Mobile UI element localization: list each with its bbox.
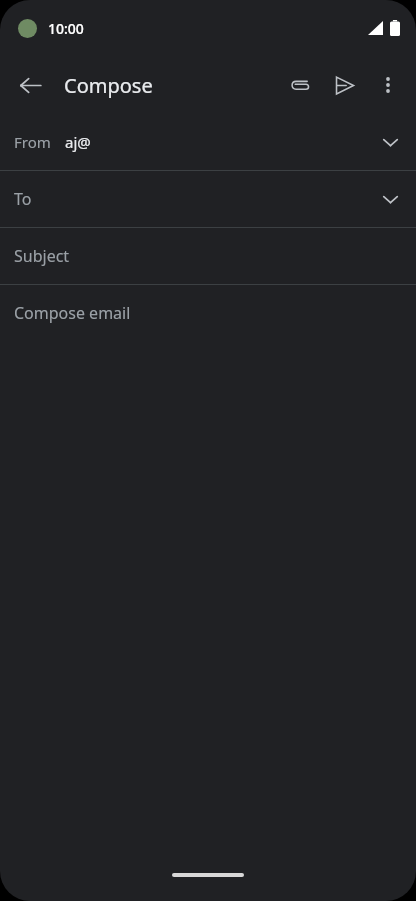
staticText: Compose email xyxy=(14,302,131,324)
button[interactable]: From xyxy=(0,114,416,170)
button[interactable]: Send xyxy=(322,63,366,107)
button[interactable]: More options xyxy=(366,63,410,107)
button[interactable]: Back xyxy=(6,61,54,109)
staticText: 10:00 xyxy=(48,19,84,38)
button[interactable]: Attach file xyxy=(278,63,322,107)
staticText: From xyxy=(14,132,51,152)
button[interactable]: Compose email xyxy=(0,285,416,341)
staticText: To xyxy=(14,188,32,210)
staticText: Subject xyxy=(14,245,70,267)
staticText: Compose xyxy=(64,72,153,99)
button[interactable]: To xyxy=(0,171,416,227)
staticText: aj@ xyxy=(65,132,91,152)
button[interactable]: Subject xyxy=(0,228,416,284)
